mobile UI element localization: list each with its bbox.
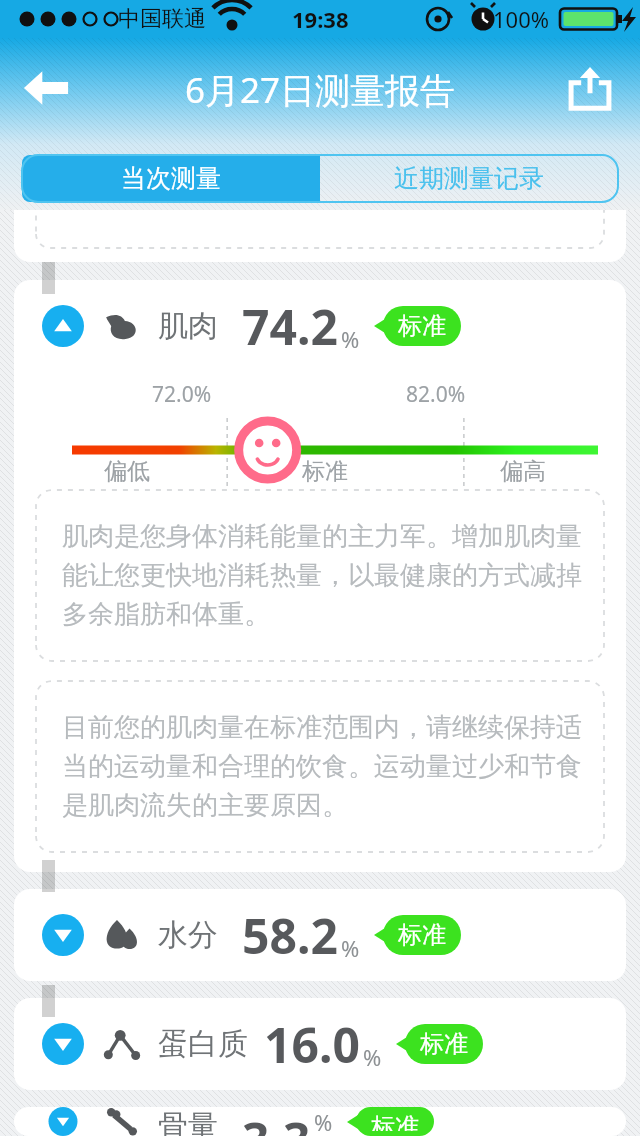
button[interactable]: Expand: [14, 998, 626, 1090]
staticText: 多余脂肪和体重。: [62, 598, 270, 631]
staticText: 当次测量: [121, 163, 221, 194]
staticText: 74.2: [242, 294, 338, 359]
button[interactable]: Back: [8, 52, 84, 124]
staticText: 水分: [158, 916, 218, 954]
staticText: 近期测量记录: [394, 163, 544, 194]
staticText: 72.0%: [152, 380, 212, 409]
staticText: 标准: [302, 457, 348, 486]
button[interactable]: 近期测量记录: [320, 155, 618, 202]
staticText: 16.0: [264, 1012, 360, 1077]
staticText: 目前您的肌肉量在标准范围内，请继续保持适: [62, 711, 582, 744]
staticText: 能让您更快地消耗热量，以最健康的方式减掉: [62, 559, 582, 592]
other: Expand: [42, 1023, 84, 1065]
staticText: 82.0%: [406, 380, 466, 409]
staticText: %: [363, 1042, 382, 1072]
staticText: 偏高: [500, 457, 546, 486]
staticText: 100%: [493, 4, 550, 34]
staticText: 标准: [398, 920, 446, 950]
staticText: %: [314, 1107, 333, 1131]
staticText: 肌肉是您身体消耗能量的主力军。增加肌肉量: [62, 520, 582, 553]
staticText: 是肌肉流失的主要原因。: [62, 789, 348, 822]
staticText: 蛋白质: [158, 1025, 248, 1063]
other: Expand: [42, 1107, 84, 1136]
staticText: 58.2: [242, 903, 338, 968]
button[interactable]: [14, 210, 626, 262]
staticText: 肌肉: [158, 307, 218, 345]
staticText: 中国联通: [118, 5, 206, 33]
staticText: 偏低: [104, 457, 150, 486]
button[interactable]: Share: [552, 52, 628, 124]
staticText: 标准: [398, 311, 446, 341]
button[interactable]: Expand: [14, 1107, 626, 1136]
button[interactable]: Collapse: [14, 280, 626, 872]
staticText: 标准: [371, 1112, 419, 1131]
other: Expand: [42, 914, 84, 956]
button[interactable]: Expand: [14, 889, 626, 981]
staticText: 当的运动量和合理的饮食。运动量过少和节食: [62, 750, 582, 783]
button[interactable]: 当次测量: [22, 155, 320, 202]
staticText: 标准: [420, 1029, 468, 1059]
staticText: %: [341, 933, 360, 963]
other: Collapse: [42, 305, 84, 347]
staticText: %: [341, 324, 360, 354]
staticText: 19:38: [292, 4, 349, 34]
staticText: 3.3: [242, 1107, 311, 1136]
staticText: 骨量: [158, 1107, 218, 1136]
staticText: 6月27日测量报告: [185, 66, 456, 114]
